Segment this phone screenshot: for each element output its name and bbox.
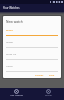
staticText: Your Watches <box>3 6 20 10</box>
button[interactable]: CANCEL <box>34 73 45 78</box>
staticText: Notes <box>6 64 13 67</box>
button[interactable]: Model <box>6 39 58 51</box>
staticText: Serial No <box>6 52 17 55</box>
staticText: Your Watches <box>10 94 23 97</box>
button[interactable]: Serial No <box>6 51 58 63</box>
button[interactable]: Your Watches <box>0 88 32 100</box>
button[interactable]: Brands <box>32 88 64 100</box>
staticText: Brand <box>6 28 13 31</box>
button[interactable]: Brand <box>6 27 58 39</box>
staticText: New watch <box>6 20 23 24</box>
staticText: Model <box>6 40 14 43</box>
button[interactable]: SAVE <box>48 73 56 78</box>
staticText: Brands <box>45 94 52 97</box>
button[interactable]: Notes <box>6 63 58 75</box>
